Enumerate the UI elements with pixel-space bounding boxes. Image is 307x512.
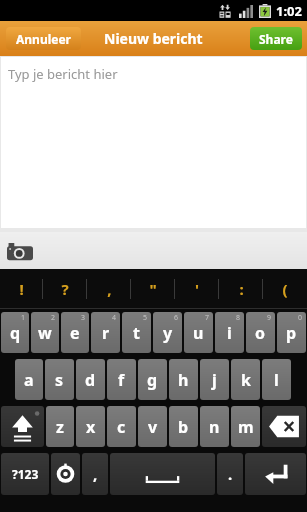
staticText: ( — [282, 279, 288, 299]
button[interactable]: , — [82, 453, 108, 495]
staticText: , — [93, 464, 98, 484]
button[interactable]: x — [76, 406, 105, 447]
staticText: 9 — [267, 313, 272, 323]
staticText: l — [274, 369, 279, 391]
staticText: t — [133, 322, 140, 344]
staticText: b — [178, 416, 189, 438]
button[interactable]: ( — [263, 269, 307, 309]
staticText: v — [148, 416, 158, 438]
staticText: r — [102, 322, 110, 344]
staticText: 2 — [51, 313, 56, 323]
staticText: ' — [195, 279, 199, 299]
staticText: a — [24, 369, 34, 391]
staticText: h — [178, 369, 189, 391]
button[interactable]: h — [169, 359, 198, 400]
staticText: ?123 — [12, 466, 39, 482]
staticText: 4 — [112, 313, 117, 323]
button[interactable]: r — [91, 312, 120, 353]
button[interactable]: y — [153, 312, 182, 353]
staticText: j — [212, 369, 217, 391]
button[interactable]: w — [31, 312, 59, 353]
staticText: ! — [19, 279, 24, 299]
button[interactable]: a — [15, 359, 43, 400]
button[interactable]: Typ je bericht hier — [1, 57, 306, 228]
button[interactable]: j — [200, 359, 229, 400]
button[interactable]: . — [217, 453, 243, 495]
button[interactable]: c — [107, 406, 136, 447]
button[interactable]: z — [46, 406, 74, 447]
staticText: w — [38, 322, 52, 344]
staticText: e — [70, 322, 80, 344]
button[interactable]: s — [45, 359, 74, 400]
button[interactable]: g — [138, 359, 167, 400]
button[interactable]: Backspace — [262, 406, 306, 447]
button[interactable]: Space — [110, 453, 215, 495]
staticText: i — [227, 322, 232, 344]
button[interactable]: ' — [175, 269, 219, 309]
staticText: d — [85, 369, 96, 391]
button[interactable]: p — [277, 312, 306, 353]
button[interactable]: o — [246, 312, 275, 353]
staticText: Nieuw bericht — [104, 29, 203, 48]
staticText: , — [107, 279, 112, 299]
staticText: p — [286, 322, 297, 344]
button[interactable]: Annuleer — [6, 27, 81, 50]
staticText: 0 — [298, 313, 303, 323]
button[interactable]: f — [107, 359, 136, 400]
staticText: ? — [61, 279, 69, 299]
staticText: 6 — [174, 313, 179, 323]
staticText: 3 — [81, 313, 86, 323]
staticText: m — [238, 416, 254, 438]
staticText: u — [193, 322, 204, 344]
staticText: 7 — [205, 313, 210, 323]
staticText: 1 — [21, 313, 26, 323]
button[interactable]: Add photo — [4, 235, 36, 267]
staticText: Annuleer — [16, 31, 71, 47]
staticText: : — [239, 279, 244, 299]
button[interactable]: n — [200, 406, 229, 447]
staticText: " — [149, 279, 157, 299]
staticText: k — [241, 369, 251, 391]
staticText: c — [117, 416, 126, 438]
button[interactable]: : — [219, 269, 263, 309]
button[interactable]: u — [184, 312, 213, 353]
staticText: n — [209, 416, 220, 438]
staticText: q — [10, 322, 21, 344]
button[interactable]: ! — [0, 269, 43, 309]
staticText: f — [118, 369, 125, 391]
button[interactable]: Shift — [1, 406, 44, 447]
button[interactable]: Enter — [245, 453, 306, 495]
staticText: x — [86, 416, 96, 438]
staticText: o — [255, 322, 266, 344]
button[interactable]: k — [231, 359, 260, 400]
button[interactable]: t — [122, 312, 151, 353]
button[interactable]: " — [131, 269, 175, 309]
button[interactable]: Share — [250, 27, 302, 50]
button[interactable]: l — [262, 359, 291, 400]
staticText: s — [55, 369, 64, 391]
staticText: g — [147, 369, 158, 391]
staticText: z — [56, 416, 64, 438]
button[interactable]: m — [231, 406, 260, 447]
staticText: 8 — [236, 313, 241, 323]
button[interactable]: e — [61, 312, 89, 353]
button[interactable]: , — [87, 269, 131, 309]
button[interactable]: ?123 — [1, 453, 49, 495]
staticText: 5 — [143, 313, 148, 323]
button[interactable]: q — [1, 312, 29, 353]
staticText: Typ je bericht hier — [8, 65, 118, 83]
button[interactable]: ? — [43, 269, 87, 309]
button[interactable]: b — [169, 406, 198, 447]
button[interactable]: d — [76, 359, 105, 400]
button[interactable]: i — [215, 312, 244, 353]
staticText: . — [228, 464, 233, 484]
staticText: y — [163, 322, 173, 344]
button[interactable]: Input settings — [51, 453, 80, 495]
button[interactable]: v — [138, 406, 167, 447]
staticText: 1:02 — [276, 2, 302, 20]
staticText: Share — [259, 31, 293, 47]
